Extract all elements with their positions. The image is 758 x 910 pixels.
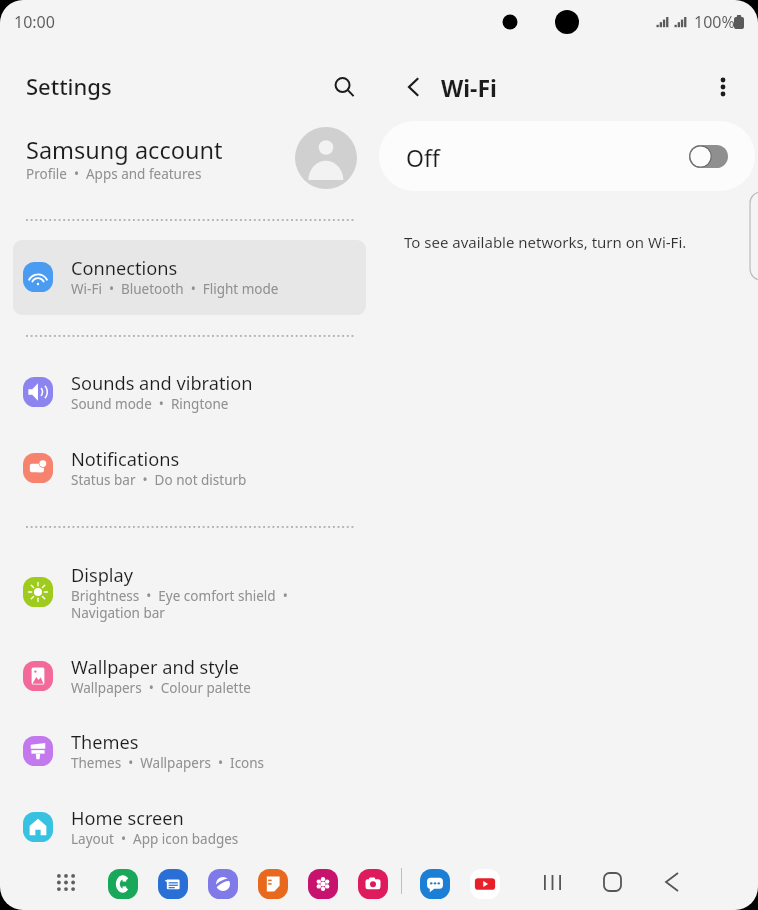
button[interactable]: App [308,869,338,899]
staticText: Notifications [71,447,180,472]
button[interactable]: Home [592,862,632,902]
staticText: Samsung account [26,134,223,166]
staticText: Settings [26,71,112,101]
button[interactable]: Themes [13,714,366,789]
button[interactable]: App [108,869,138,899]
button[interactable]: App [258,869,288,899]
staticText: Profile • Apps and features [26,165,202,183]
staticText: Layout • App icon badges [71,830,239,848]
button[interactable]: Connections [13,240,366,315]
staticText: Display [71,563,134,588]
staticText: Home screen [71,806,184,831]
button[interactable]: YouTube [470,869,500,899]
staticText: 100% [694,11,735,33]
button[interactable]: Back [394,68,432,106]
button[interactable]: Recents [532,862,572,902]
button[interactable]: Home screen [13,790,366,865]
staticText: Off [406,142,440,173]
staticText: Navigation bar [71,604,165,622]
button[interactable]: Samsung account [0,123,379,201]
staticText: Wi-Fi • Bluetooth • Flight mode [71,280,279,298]
button[interactable]: Display [13,555,366,630]
staticText: Wallpapers • Colour palette [71,679,251,697]
button[interactable]: App [358,869,388,899]
staticText: Sound mode • Ringtone [71,395,229,413]
button[interactable]: Search [324,67,364,107]
staticText: Status bar • Do not disturb [71,471,247,489]
staticText: Sounds and vibration [71,371,253,396]
staticText: 10:00 [14,11,55,33]
button[interactable]: More options [704,68,742,106]
staticText: Themes [71,730,139,755]
button[interactable]: Off [379,121,755,191]
button[interactable]: Notifications [13,431,366,506]
button[interactable]: Wallpaper and style [13,639,366,714]
staticText: Themes • Wallpapers • Icons [71,754,265,772]
button[interactable]: Messenger [420,869,450,899]
button[interactable]: Back [652,862,692,902]
staticText: Brightness • Eye comfort shield • [71,587,288,605]
staticText: To see available networks, turn on Wi-Fi… [404,232,687,252]
button[interactable]: Apps [57,874,75,891]
button[interactable]: Sounds and vibration [13,355,366,430]
button[interactable]: App [158,869,188,899]
staticText: Wallpaper and style [71,655,240,680]
button[interactable]: App [208,869,238,899]
staticText: Connections [71,256,178,281]
staticText: Wi-Fi [441,72,497,103]
